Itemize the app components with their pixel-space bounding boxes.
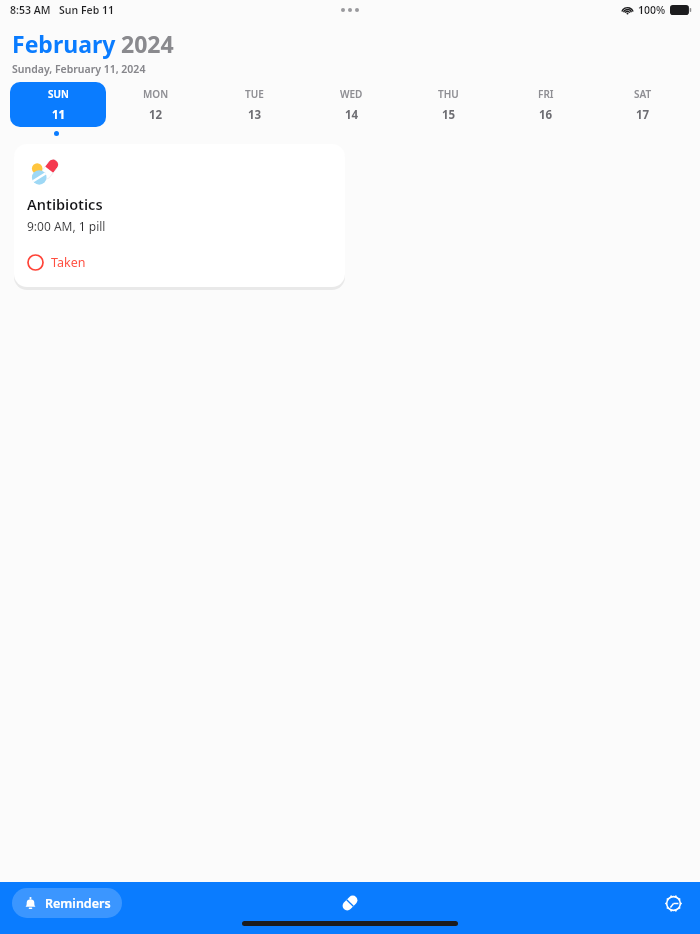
staticText: SAT xyxy=(634,87,652,101)
button[interactable]: Settings xyxy=(658,888,688,918)
button[interactable]: Antibiotics xyxy=(14,144,345,287)
staticText: 11 xyxy=(52,107,66,123)
button[interactable]: MON xyxy=(108,82,204,127)
button[interactable]: SAT xyxy=(595,82,690,127)
staticText: 13 xyxy=(248,107,262,123)
staticText: WED xyxy=(340,87,363,101)
button[interactable]: WED xyxy=(304,82,399,127)
staticText: Antibiotics xyxy=(27,194,103,214)
staticText: 2024 xyxy=(121,28,174,59)
staticText: Sun Feb 11 xyxy=(59,3,115,17)
staticText: 100% xyxy=(638,3,666,17)
button[interactable]: Reminders xyxy=(12,888,122,918)
staticText: 12 xyxy=(149,107,163,123)
button[interactable]: SUN xyxy=(10,82,106,127)
staticText: 9:00 AM, 1 pill xyxy=(27,218,106,234)
button[interactable]: FRI xyxy=(498,82,593,127)
staticText: MON xyxy=(143,87,169,101)
button[interactable]: TUE xyxy=(206,82,302,127)
staticText: February xyxy=(12,28,116,59)
staticText: 14 xyxy=(345,107,359,123)
staticText: 15 xyxy=(442,107,456,123)
staticText: 8:53 AM xyxy=(10,3,51,17)
staticText: Taken xyxy=(51,254,86,271)
button[interactable]: Taken xyxy=(27,252,92,273)
staticText: 16 xyxy=(539,107,553,123)
staticText: FRI xyxy=(538,87,554,101)
staticText: THU xyxy=(438,87,459,101)
staticText: Reminders xyxy=(45,895,111,912)
staticText: Sunday, February 11, 2024 xyxy=(12,62,146,76)
button[interactable]: Medications xyxy=(335,888,365,918)
staticText: TUE xyxy=(245,87,264,101)
staticText: SUN xyxy=(48,87,69,101)
staticText: 17 xyxy=(636,107,650,123)
button[interactable]: THU xyxy=(401,82,496,127)
